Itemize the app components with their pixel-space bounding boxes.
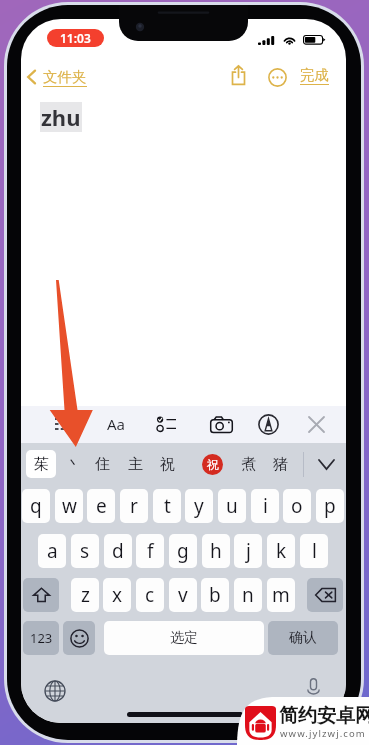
button[interactable]: 猪: [265, 450, 295, 478]
staticText: d: [112, 538, 124, 564]
staticText: b: [209, 582, 221, 608]
staticText: 猪: [273, 455, 288, 474]
button[interactable]: 茱: [26, 450, 56, 478]
button[interactable]: t: [153, 489, 181, 523]
staticText: x: [112, 582, 123, 608]
staticText: 文件夹: [43, 68, 87, 86]
staticText: i: [263, 493, 268, 519]
staticText: z: [81, 582, 90, 608]
button[interactable]: 住: [87, 450, 117, 478]
button[interactable]: Backspace: [307, 578, 343, 612]
staticText: p: [324, 493, 336, 519]
button[interactable]: p: [316, 489, 344, 523]
staticText: a: [47, 538, 58, 564]
staticText: k: [276, 538, 287, 564]
button[interactable]: i: [251, 489, 279, 523]
button[interactable]: z: [71, 578, 99, 612]
staticText: 完成: [300, 66, 329, 84]
button[interactable]: Camera: [209, 412, 233, 436]
button[interactable]: Markup: [256, 412, 280, 436]
staticText: 确认: [289, 629, 317, 647]
staticText: 祝: [160, 455, 175, 474]
button[interactable]: 完成: [300, 65, 329, 86]
button[interactable]: w: [55, 489, 83, 523]
staticText: Aa: [107, 414, 126, 434]
staticText: 11:03: [60, 30, 91, 46]
button[interactable]: d: [104, 534, 132, 568]
button[interactable]: 丶: [58, 450, 88, 478]
staticText: zhu: [41, 102, 81, 132]
staticText: www.jylzwj.com: [280, 727, 366, 740]
button[interactable]: Checklist: [154, 412, 178, 436]
staticText: 煮: [241, 455, 256, 474]
button[interactable]: l: [300, 534, 328, 568]
button[interactable]: Shift: [23, 578, 59, 612]
button[interactable]: e: [87, 489, 115, 523]
staticText: o: [291, 493, 303, 519]
button[interactable]: k: [267, 534, 295, 568]
button[interactable]: a: [38, 534, 66, 568]
staticText: 茱: [34, 455, 49, 474]
staticText: 主: [128, 455, 143, 474]
staticText: m: [272, 582, 290, 608]
button[interactable]: 煮: [233, 450, 263, 478]
staticText: 简约安卓网: [279, 704, 369, 728]
button[interactable]: o: [283, 489, 311, 523]
staticText: w: [62, 493, 77, 519]
staticText: u: [226, 493, 238, 519]
staticText: y: [194, 493, 204, 519]
staticText: r: [130, 493, 138, 519]
button[interactable]: Numbers: [23, 621, 59, 655]
button[interactable]: h: [202, 534, 230, 568]
staticText: n: [242, 582, 254, 608]
staticText: h: [210, 538, 222, 564]
button[interactable]: f: [136, 534, 164, 568]
button[interactable]: More options: [266, 66, 288, 88]
button[interactable]: j: [234, 534, 262, 568]
button[interactable]: s: [71, 534, 99, 568]
button[interactable]: Expand candidates: [309, 450, 343, 478]
staticText: v: [178, 582, 188, 608]
staticText: g: [177, 538, 189, 564]
button[interactable]: y: [185, 489, 213, 523]
staticText: c: [145, 582, 155, 608]
staticText: 选定: [170, 629, 198, 647]
staticText: 住: [95, 455, 110, 474]
button[interactable]: c: [136, 578, 164, 612]
button[interactable]: r: [120, 489, 148, 523]
staticText: e: [96, 493, 107, 519]
button[interactable]: Emoji: [63, 621, 95, 655]
button[interactable]: g: [169, 534, 197, 568]
staticText: t: [164, 493, 171, 519]
button[interactable]: b: [201, 578, 229, 612]
button[interactable]: Dictate: [303, 677, 323, 697]
button[interactable]: n: [234, 578, 262, 612]
button[interactable]: 祝: [152, 450, 182, 478]
button[interactable]: q: [22, 489, 50, 523]
button[interactable]: 主: [120, 450, 150, 478]
button[interactable]: Share: [227, 64, 249, 86]
staticText: l: [312, 538, 317, 564]
staticText: 丶: [66, 455, 81, 474]
button[interactable]: Text format: [104, 412, 128, 436]
staticText: q: [30, 493, 42, 519]
button[interactable]: Confirm: [268, 621, 338, 655]
button[interactable]: v: [169, 578, 197, 612]
button[interactable]: x: [103, 578, 131, 612]
staticText: 123: [30, 629, 53, 647]
button[interactable]: 文件夹: [26, 66, 87, 88]
button[interactable]: 祝: [197, 450, 227, 478]
button[interactable]: m: [267, 578, 295, 612]
button[interactable]: Switch keyboard language: [44, 680, 66, 702]
staticText: f: [147, 538, 154, 564]
button[interactable]: 选定: [104, 621, 264, 655]
staticText: 祝: [207, 457, 219, 472]
button[interactable]: u: [218, 489, 246, 523]
button[interactable]: Close keyboard: [304, 412, 328, 436]
button[interactable]: Bulleted list: [51, 412, 75, 436]
staticText: j: [246, 538, 251, 564]
staticText: s: [80, 538, 90, 564]
